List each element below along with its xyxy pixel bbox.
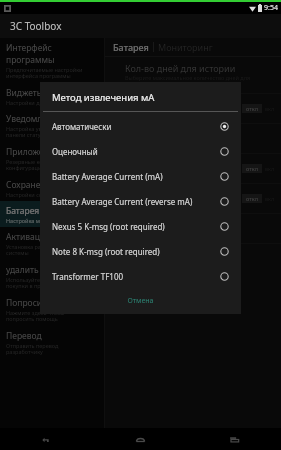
button[interactable]: Home [93,428,187,450]
staticText: Настройки для всех виджетов [6,99,87,106]
staticText: Note 8 K-msg (root required) [52,246,220,257]
staticText: Как сохранять [125,99,188,111]
button[interactable]: Уведомление [105,214,281,244]
staticText: Предпочитаемые настройки интерфейса прог… [6,66,83,80]
staticText: Постоянным [125,231,160,238]
button[interactable]: Back [0,428,93,450]
staticText: вкл [265,165,275,172]
staticText: Метод извлечения мА [52,91,155,104]
staticText: Сохранение [6,179,56,191]
button[interactable]: Автоматически [40,114,241,139]
staticText: Уведомления [6,113,63,125]
button[interactable]: Попросить [0,293,104,326]
button[interactable]: Приложение [0,142,104,175]
button[interactable]: Оценочный [40,139,241,164]
button[interactable]: Recents [187,428,281,450]
button[interactable]: Сохранение [0,175,104,201]
staticText: удалить рекламу [6,264,76,276]
button[interactable]: Note 8 K-msg (root required) [40,239,241,264]
button[interactable]: Метод извлечения мА [105,124,281,154]
staticText: Отмена [127,296,154,306]
staticText: Нажмите здесь чтобы попросить помощь [6,309,65,323]
staticText: Виджеты [6,87,44,99]
staticText: Кол-во дней для истории [125,62,236,74]
staticText: Калибровка [125,189,178,201]
staticText: Задать уровень [125,201,167,208]
staticText: Попросить [6,297,51,309]
staticText: Приложение [6,146,59,158]
staticText: 9:54 [264,3,278,13]
staticText: Батарея [6,205,40,217]
staticText: Автоматически [52,121,220,132]
button[interactable]: Батарея [113,41,149,53]
staticText: Используйте меню покупки в программе [6,276,65,290]
staticText: вкл [265,195,275,202]
staticText: Интерфейс программы [6,42,100,66]
button[interactable]: удалить рекламу [0,260,104,293]
staticText: откл [246,105,258,112]
staticText: Установка расширений системы [6,243,69,257]
button[interactable]: Уведомления [0,109,104,142]
staticText: Перевод [6,330,42,342]
staticText: Настройка уведомлений на панели статусов [6,125,80,139]
staticText: Настройки сохранения [6,191,68,198]
button[interactable]: Отмена [40,291,241,311]
button[interactable]: откл [242,104,275,113]
staticText: Мониторинг [158,41,213,53]
button[interactable]: Виджеты [0,83,104,109]
staticText: откл [246,165,258,172]
button[interactable]: Батарея [0,201,104,227]
button[interactable]: Кол-во дней для истории [105,57,281,94]
button[interactable]: 3C Toolbox [0,14,281,38]
button[interactable]: Battery Average Current (reverse mA) [40,189,241,214]
button[interactable]: откл [242,164,275,173]
button[interactable]: Transformer TF100 [40,264,241,289]
button[interactable]: Активация [0,227,104,260]
staticText: Battery Average Current (reverse mA) [52,196,220,207]
button[interactable]: Nexus 5 K-msg (root required) [40,214,241,239]
button[interactable]: Перевод [0,326,104,359]
button[interactable]: Мониторинг [158,41,213,53]
staticText: Battery Average Current (mA) [52,171,220,182]
staticText: откл [246,195,258,202]
staticText: Отправить перевод разработчику [6,342,59,356]
button[interactable]: Калибровка [105,184,281,214]
staticText: Значение зарядки [125,171,175,178]
staticText: Активация [6,231,51,243]
staticText: вкл [265,105,275,112]
button[interactable]: Предел тока [105,154,281,184]
staticText: Nexus 5 K-msg (root required) [52,221,220,232]
staticText: 3C Toolbox [10,19,62,33]
button[interactable]: Интерфейс программы [0,38,104,83]
button[interactable]: откл [242,194,275,203]
staticText: Никогда не [125,111,156,118]
staticText: Выберите максимальное количество дней дл… [125,74,251,88]
staticText: Настройка мониторинга [6,217,72,224]
button[interactable]: Как сохранять [105,94,281,124]
button[interactable]: Battery Average Current (mA) [40,164,241,189]
staticText: Батарея [113,41,149,53]
staticText: Уведомление [125,219,185,231]
staticText: Резервные копии и конфигурации [6,158,58,172]
staticText: Оценочный [52,146,220,157]
staticText: Transformer TF100 [52,271,220,282]
